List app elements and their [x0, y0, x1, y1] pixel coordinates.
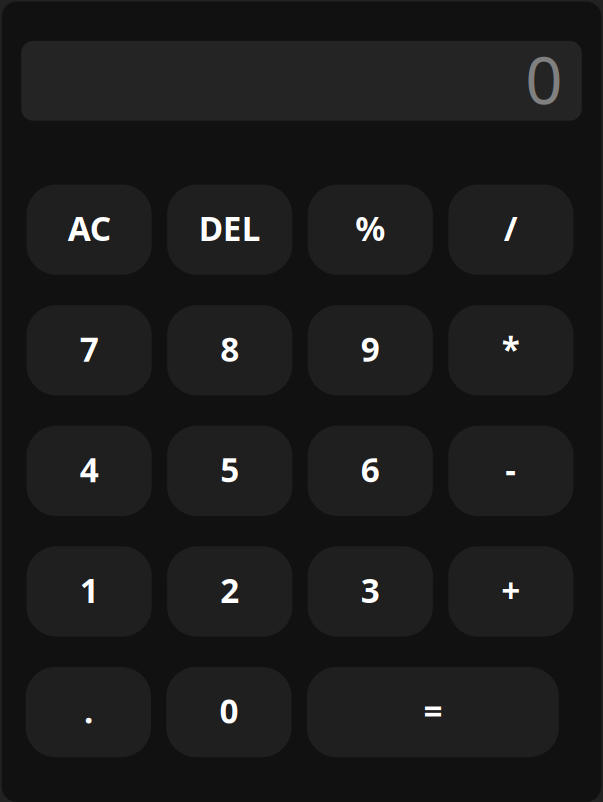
button[interactable]: *	[448, 305, 573, 395]
staticText: 5	[220, 447, 239, 491]
staticText: 6	[361, 447, 380, 491]
button[interactable]: 5	[167, 426, 292, 516]
staticText: +	[501, 568, 520, 612]
staticText: =	[423, 688, 442, 733]
button[interactable]: AC	[26, 184, 152, 275]
staticText: .	[84, 688, 93, 733]
staticText: 7	[80, 327, 99, 371]
button[interactable]: 7	[26, 305, 152, 395]
staticText: AC	[68, 206, 111, 250]
staticText: 2	[220, 568, 239, 612]
staticText: /	[504, 206, 518, 250]
staticText: 0	[219, 688, 238, 733]
button[interactable]: -	[448, 426, 573, 516]
button[interactable]: 8	[167, 305, 292, 395]
button[interactable]: =	[307, 667, 559, 757]
staticText: 4	[80, 447, 99, 491]
staticText: 0	[525, 35, 562, 122]
staticText: *	[502, 327, 520, 371]
staticText: 3	[361, 568, 380, 612]
button[interactable]: 1	[26, 546, 152, 637]
button[interactable]: 3	[308, 546, 433, 637]
staticText: %	[355, 206, 385, 250]
staticText: 9	[361, 327, 380, 371]
button[interactable]: 9	[308, 305, 433, 395]
staticText: 8	[220, 327, 239, 371]
button[interactable]: +	[448, 546, 573, 637]
button[interactable]: %	[308, 184, 433, 275]
staticText: -	[505, 447, 516, 491]
button[interactable]: DEL	[167, 184, 292, 275]
button[interactable]: 0	[166, 667, 291, 757]
button[interactable]: 6	[308, 426, 433, 516]
button[interactable]: 2	[167, 546, 292, 637]
staticText: 1	[80, 568, 99, 612]
staticText: DEL	[199, 206, 261, 250]
button[interactable]: /	[448, 184, 573, 275]
button[interactable]: .	[26, 667, 151, 757]
button[interactable]: 4	[26, 426, 152, 516]
